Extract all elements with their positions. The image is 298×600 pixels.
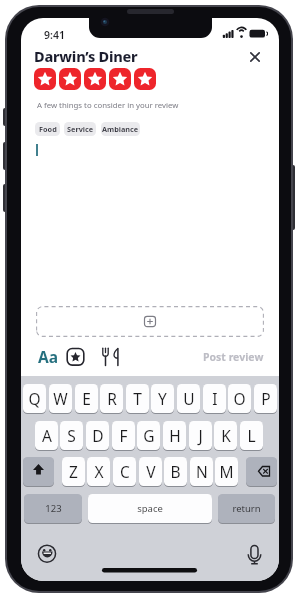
button[interactable]: space xyxy=(88,494,212,524)
button[interactable]: Food xyxy=(35,122,60,136)
button[interactable]: E xyxy=(75,384,98,414)
staticText: Q xyxy=(28,388,41,409)
staticText: K xyxy=(221,425,231,446)
button[interactable]: R xyxy=(100,384,123,414)
staticText: E xyxy=(82,388,91,409)
button[interactable]: G xyxy=(137,421,160,451)
button[interactable]: X xyxy=(87,457,110,487)
staticText: U xyxy=(183,388,195,409)
button[interactable] xyxy=(243,543,264,564)
staticText: 9:41 xyxy=(44,28,65,42)
staticText: V xyxy=(146,461,156,482)
staticText: Post review xyxy=(203,350,264,364)
staticText: X xyxy=(94,461,104,482)
button[interactable]: Ambiance xyxy=(101,122,140,136)
staticText: space xyxy=(137,502,163,515)
button[interactable]: Post review xyxy=(188,348,264,366)
button[interactable] xyxy=(99,347,123,367)
button[interactable] xyxy=(36,306,264,337)
button[interactable]: Z xyxy=(62,457,85,487)
button[interactable]: A xyxy=(35,421,58,451)
staticText: Darwin’s Diner xyxy=(34,46,138,66)
staticText: A few things to consider in your review xyxy=(37,100,179,111)
staticText: return xyxy=(232,502,261,515)
staticText: Ambiance xyxy=(102,124,139,134)
button[interactable]: Aa xyxy=(31,347,57,367)
button[interactable]: F xyxy=(112,421,135,451)
staticText: H xyxy=(169,425,181,446)
button[interactable]: O xyxy=(228,384,251,414)
staticText: G xyxy=(143,425,155,446)
staticText: S xyxy=(67,425,76,446)
button[interactable] xyxy=(59,68,81,90)
button[interactable]: V xyxy=(139,457,162,487)
staticText: O xyxy=(233,388,246,409)
staticText: I xyxy=(212,388,218,409)
button[interactable]: Y xyxy=(151,384,174,414)
staticText: W xyxy=(53,388,68,409)
button[interactable]: U xyxy=(177,384,200,414)
staticText: J xyxy=(198,425,203,446)
button[interactable]: T xyxy=(126,384,149,414)
button[interactable] xyxy=(109,68,131,90)
button[interactable] xyxy=(134,68,156,90)
button[interactable]: C xyxy=(113,457,136,487)
button[interactable]: I xyxy=(203,384,226,414)
staticText: M xyxy=(219,461,234,482)
button[interactable]: Service xyxy=(64,122,96,136)
staticText: Aa xyxy=(38,346,59,366)
button[interactable]: S xyxy=(60,421,83,451)
button[interactable]: D xyxy=(86,421,109,451)
button[interactable] xyxy=(65,347,86,367)
staticText: L xyxy=(247,425,256,446)
button[interactable] xyxy=(84,68,106,90)
button[interactable] xyxy=(246,457,277,487)
button[interactable]: B xyxy=(164,457,187,487)
button[interactable]: H xyxy=(163,421,186,451)
staticText: C xyxy=(120,461,130,482)
staticText: Y xyxy=(158,388,167,409)
button[interactable] xyxy=(37,543,58,564)
staticText: F xyxy=(119,425,128,446)
staticText: Z xyxy=(69,461,78,482)
button[interactable]: return xyxy=(218,494,275,524)
button[interactable]: Q xyxy=(23,384,46,414)
staticText: B xyxy=(170,461,181,482)
staticText: P xyxy=(261,388,271,409)
button[interactable]: N xyxy=(190,457,213,487)
button[interactable]: L xyxy=(240,421,263,451)
staticText: D xyxy=(92,425,104,446)
button[interactable] xyxy=(34,68,56,90)
staticText: Food xyxy=(39,124,57,134)
staticText: Service xyxy=(67,124,94,134)
button[interactable] xyxy=(247,49,263,65)
button[interactable]: P xyxy=(254,384,277,414)
button[interactable]: J xyxy=(189,421,212,451)
button[interactable]: 123 xyxy=(24,494,82,524)
staticText: N xyxy=(196,461,208,482)
button[interactable]: M xyxy=(215,457,238,487)
button[interactable]: K xyxy=(214,421,237,451)
staticText: 123 xyxy=(45,502,62,515)
staticText: T xyxy=(133,388,142,409)
staticText: A xyxy=(42,425,52,446)
button[interactable]: W xyxy=(49,384,72,414)
button[interactable] xyxy=(23,457,54,487)
staticText: R xyxy=(107,388,117,409)
